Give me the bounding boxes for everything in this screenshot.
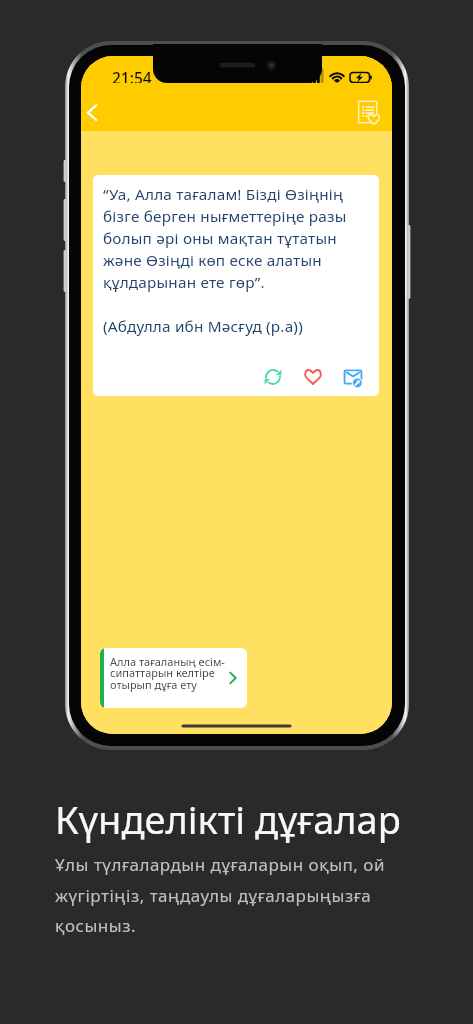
button[interactable]: Add to favourites xyxy=(296,360,330,394)
staticText: “Уа, Алла тағалам! Бізді Өзіңнің бізге б… xyxy=(103,184,373,337)
button[interactable]: Refresh xyxy=(256,360,290,394)
button[interactable]: “Уа, Алла тағалам! Бізді Өзіңнің бізге б… xyxy=(93,175,379,396)
button[interactable]: Share xyxy=(336,360,370,394)
button[interactable]: Алла тағаланың есім- сипаттарын келтіре … xyxy=(100,648,247,708)
staticText: Ұлы түлғалардын дұғаларын оқып, ой жүгір… xyxy=(55,853,385,937)
staticText: Күнделікті дұғалар xyxy=(55,793,401,845)
staticText: 21:54 xyxy=(112,67,152,88)
staticText: Алла тағаланың есім- сипаттарын келтіре … xyxy=(110,654,225,693)
button[interactable]: Favourite prayers list xyxy=(347,90,381,124)
button[interactable]: Back xyxy=(81,83,121,131)
